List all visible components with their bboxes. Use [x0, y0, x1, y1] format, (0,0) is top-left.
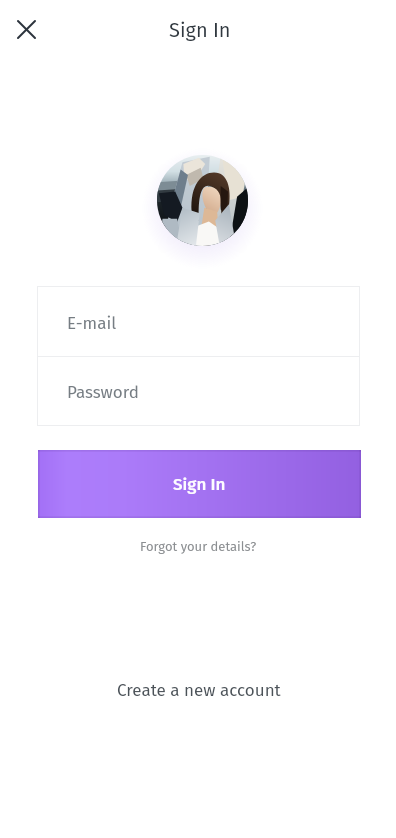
staticText: E-mail [67, 313, 117, 333]
staticText: Sign In [169, 18, 231, 42]
staticText: Sign In [173, 474, 226, 494]
button[interactable]: Sign In [38, 450, 361, 518]
button[interactable]: Forgot your details? [130, 534, 267, 560]
button[interactable]: Password [37, 356, 360, 425]
button[interactable]: Close [8, 11, 44, 47]
button[interactable]: E-mail [37, 286, 360, 356]
button[interactable]: Create a new account [105, 674, 293, 706]
staticText: Password [67, 382, 139, 402]
